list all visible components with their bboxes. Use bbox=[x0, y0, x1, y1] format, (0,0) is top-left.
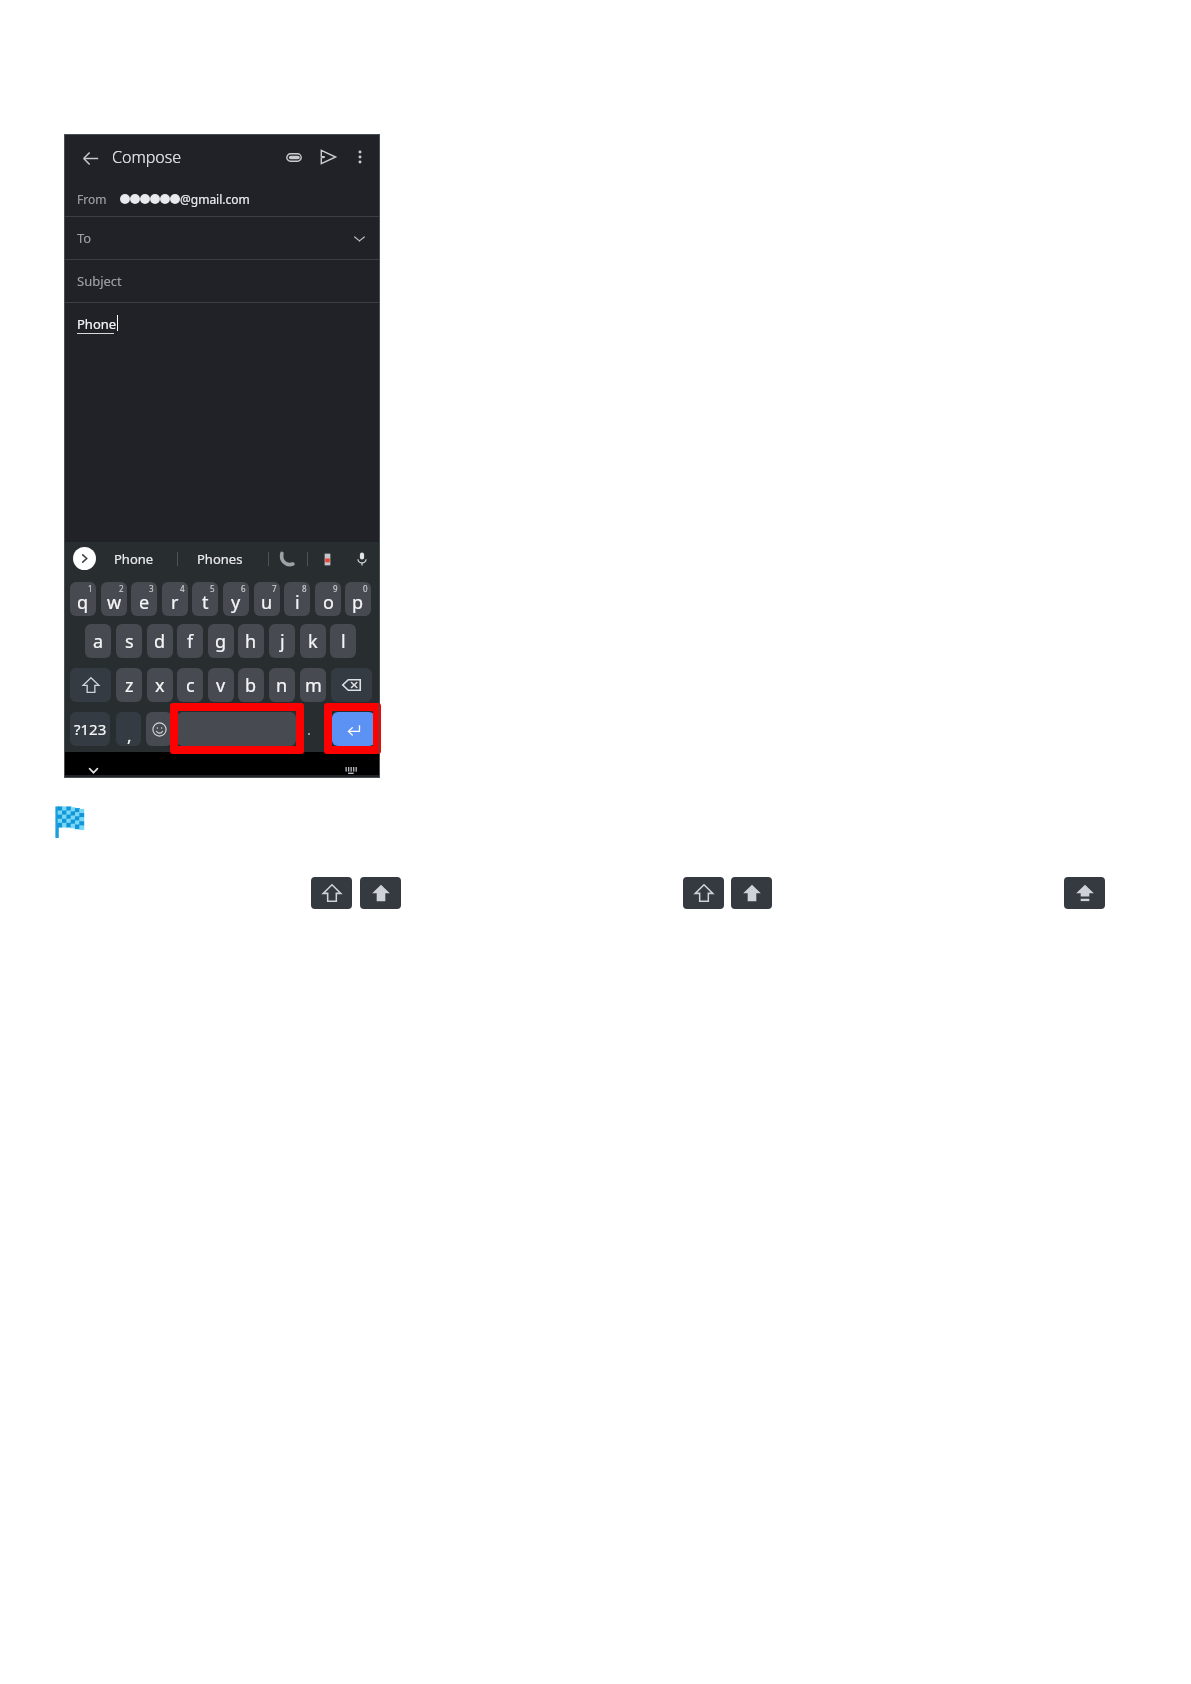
button[interactable]: n bbox=[269, 668, 295, 702]
button[interactable]: i bbox=[284, 582, 310, 616]
button[interactable]: Shift bbox=[683, 877, 724, 909]
button[interactable]: Enter bbox=[332, 712, 375, 746]
staticText: j bbox=[280, 629, 285, 654]
button[interactable]: Shift bbox=[360, 877, 401, 909]
staticText: Subject bbox=[77, 272, 122, 290]
button[interactable]: c bbox=[177, 668, 203, 702]
staticText: From bbox=[77, 191, 107, 207]
button[interactable]: Clipboard bbox=[313, 542, 341, 576]
staticText: w bbox=[107, 590, 122, 615]
button[interactable]: Call bbox=[273, 542, 301, 576]
staticText: l bbox=[341, 629, 346, 654]
button[interactable]: Subject bbox=[64, 260, 380, 302]
staticText: Phone bbox=[114, 550, 154, 568]
staticText: k bbox=[308, 629, 318, 654]
button[interactable]: Hide keyboard bbox=[81, 759, 105, 782]
button[interactable]: Shift bbox=[731, 877, 772, 909]
button[interactable]: u bbox=[254, 582, 280, 616]
button[interactable]: Period bbox=[298, 712, 320, 746]
staticText: 5 bbox=[210, 583, 215, 594]
button[interactable]: More suggestions bbox=[73, 547, 96, 570]
button[interactable]: m bbox=[300, 668, 326, 702]
button[interactable]: Phone bbox=[100, 542, 168, 576]
staticText: 6 bbox=[241, 583, 246, 594]
button[interactable]: Delete bbox=[331, 668, 372, 702]
button[interactable]: w bbox=[101, 582, 127, 616]
staticText: u bbox=[261, 590, 273, 615]
button[interactable]: Shift bbox=[70, 668, 111, 702]
staticText: 0 bbox=[363, 583, 368, 594]
button[interactable]: More options bbox=[346, 143, 374, 171]
button[interactable]: b bbox=[238, 668, 264, 702]
staticText: g bbox=[215, 629, 227, 654]
button[interactable]: g bbox=[208, 624, 234, 658]
button[interactable]: k bbox=[300, 624, 326, 658]
staticText: b bbox=[245, 673, 257, 698]
staticText: 4 bbox=[180, 583, 185, 594]
staticText: 7 bbox=[272, 583, 277, 594]
staticText: Phone bbox=[77, 315, 117, 333]
staticText: t bbox=[202, 590, 209, 615]
button[interactable]: j bbox=[269, 624, 295, 658]
button[interactable]: Change keyboard bbox=[339, 759, 363, 782]
button[interactable]: Phones bbox=[186, 542, 254, 576]
button[interactable]: f bbox=[177, 624, 203, 658]
button[interactable]: Phone bbox=[64, 303, 380, 543]
staticText: p bbox=[352, 590, 364, 615]
staticText: y bbox=[231, 590, 241, 615]
button[interactable]: a bbox=[85, 624, 111, 658]
button[interactable]: x bbox=[147, 668, 173, 702]
button[interactable]: l bbox=[330, 624, 356, 658]
staticText: z bbox=[125, 673, 134, 698]
button[interactable]: z bbox=[116, 668, 142, 702]
staticText: e bbox=[139, 590, 150, 615]
staticText: q bbox=[77, 590, 89, 615]
button[interactable]: o bbox=[315, 582, 341, 616]
staticText: Compose bbox=[112, 146, 182, 168]
staticText: x bbox=[155, 673, 165, 698]
staticText: c bbox=[186, 673, 195, 698]
button[interactable]: Voice input bbox=[348, 542, 376, 576]
staticText: 9 bbox=[333, 583, 338, 594]
button[interactable]: v bbox=[208, 668, 234, 702]
staticText: d bbox=[154, 629, 166, 654]
button[interactable]: Attach file bbox=[280, 143, 308, 171]
staticText: , bbox=[127, 724, 132, 746]
staticText: Phones bbox=[197, 550, 243, 568]
staticText: i bbox=[295, 590, 300, 615]
staticText: To bbox=[77, 229, 92, 247]
button[interactable]: t bbox=[192, 582, 218, 616]
button[interactable]: Send bbox=[314, 143, 342, 171]
button[interactable]: Navigate up bbox=[76, 144, 104, 172]
staticText: h bbox=[245, 629, 257, 654]
staticText: a bbox=[93, 629, 104, 654]
button[interactable]: s bbox=[116, 624, 142, 658]
button[interactable]: Symbols bbox=[70, 712, 110, 746]
button[interactable]: r bbox=[162, 582, 188, 616]
staticText: r bbox=[171, 590, 179, 615]
button[interactable]: Space bbox=[177, 712, 296, 746]
button[interactable]: From bbox=[64, 181, 380, 216]
staticText: o bbox=[323, 590, 334, 615]
button[interactable]: Comma bbox=[116, 712, 141, 746]
staticText: 3 bbox=[149, 583, 154, 594]
button[interactable]: To bbox=[64, 217, 380, 259]
staticText: ?123 bbox=[74, 719, 107, 739]
button[interactable]: Caps lock bbox=[1064, 877, 1105, 909]
staticText: @gmail.com bbox=[180, 191, 250, 207]
button[interactable]: q bbox=[70, 582, 96, 616]
staticText: f bbox=[187, 629, 194, 654]
staticText: 1 bbox=[88, 583, 93, 594]
button[interactable]: Shift bbox=[311, 877, 352, 909]
staticText: 2 bbox=[119, 583, 124, 594]
staticText: n bbox=[276, 673, 288, 698]
staticText: v bbox=[216, 673, 226, 698]
button[interactable]: p bbox=[345, 582, 371, 616]
button[interactable]: e bbox=[131, 582, 157, 616]
button[interactable]: d bbox=[147, 624, 173, 658]
button[interactable]: h bbox=[238, 624, 264, 658]
button[interactable]: Emoji bbox=[146, 712, 172, 746]
staticText: m bbox=[305, 673, 322, 698]
button[interactable]: y bbox=[223, 582, 249, 616]
staticText: 8 bbox=[302, 583, 307, 594]
